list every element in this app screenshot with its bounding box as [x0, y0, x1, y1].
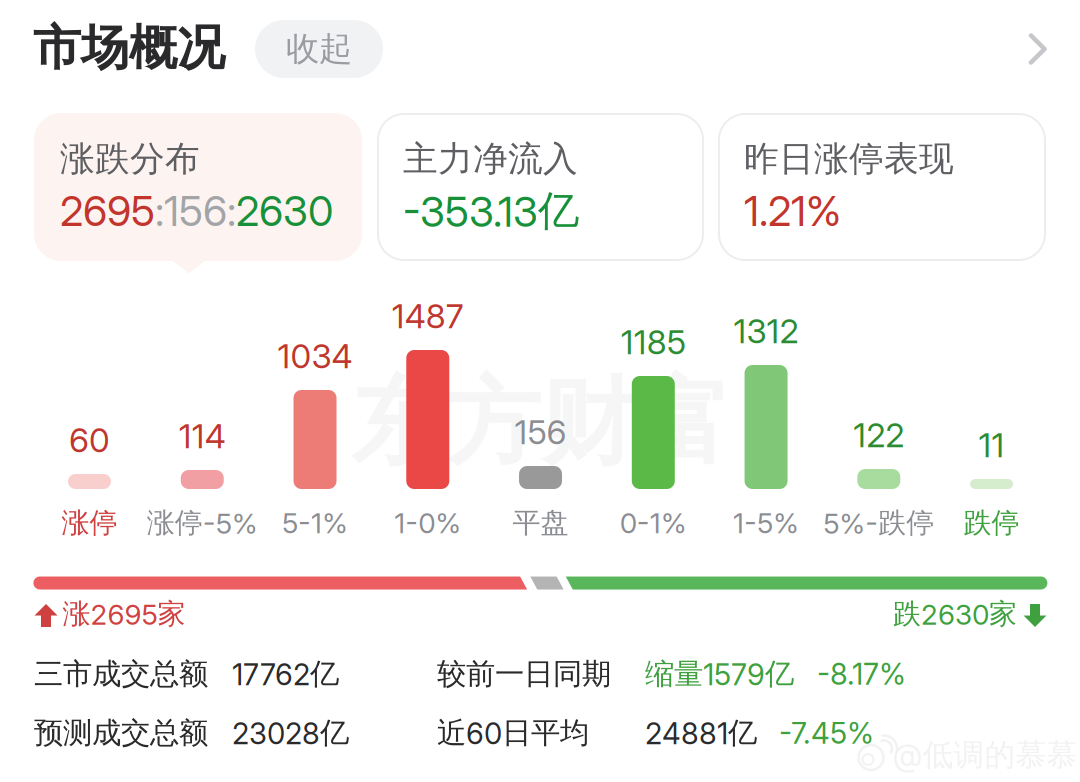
- staticText: 11: [979, 425, 1005, 465]
- staticText: 涨2695家: [62, 596, 185, 632]
- button[interactable]: 收起: [255, 20, 383, 78]
- staticText: 跌停: [964, 505, 1020, 541]
- staticText: 1.21%: [744, 186, 841, 236]
- staticText: 收起: [286, 28, 352, 70]
- staticText: 60: [69, 420, 110, 460]
- staticText: 1487: [392, 296, 464, 336]
- staticText: 预测成交总额: [34, 714, 208, 751]
- staticText: 114: [179, 416, 226, 456]
- staticText: 2695: [60, 186, 155, 236]
- staticText: 较前一日同期: [437, 655, 611, 692]
- staticText: 主力净流入: [403, 137, 578, 181]
- staticText: 2630: [236, 186, 333, 236]
- staticText: :: [227, 186, 236, 236]
- staticText: 市场概况: [33, 18, 225, 78]
- staticText: :: [155, 186, 164, 236]
- staticText: 5%-跌停: [823, 505, 934, 541]
- staticText: 平盘: [512, 505, 568, 541]
- staticText: 5-1%: [282, 506, 348, 540]
- staticText: 23028亿: [232, 714, 349, 751]
- button[interactable]: Expand section: [1028, 33, 1047, 65]
- staticText: -7.45%: [779, 715, 874, 751]
- staticText: 0-1%: [620, 506, 687, 540]
- staticText: 24881亿: [645, 714, 757, 751]
- staticText: 近60日平均: [437, 714, 589, 751]
- staticText: 昨日涨停表现: [744, 137, 954, 181]
- staticText: 东方财富: [351, 363, 731, 483]
- staticText: 涨停: [61, 505, 117, 541]
- staticText: 156: [164, 186, 227, 236]
- staticText: 三市成交总额: [34, 655, 208, 692]
- staticText: 17762亿: [232, 655, 339, 692]
- staticText: 涨停-5%: [147, 505, 258, 541]
- staticText: -353.13亿: [403, 185, 579, 237]
- button[interactable]: 市场概况: [33, 18, 225, 78]
- staticText: 跌2630家: [893, 596, 1017, 632]
- staticText: 156: [514, 412, 566, 452]
- staticText: 1-0%: [394, 506, 461, 540]
- staticText: 1185: [621, 322, 686, 362]
- staticText: @低调的慕慕: [892, 736, 1077, 774]
- staticText: 122: [853, 415, 904, 455]
- staticText: 涨跌分布: [60, 137, 200, 181]
- staticText: 缩量1579亿: [645, 655, 794, 692]
- staticText: 1034: [277, 336, 352, 376]
- staticText: 1312: [734, 311, 799, 351]
- staticText: 1-5%: [733, 506, 799, 540]
- staticText: -8.17%: [817, 656, 906, 692]
